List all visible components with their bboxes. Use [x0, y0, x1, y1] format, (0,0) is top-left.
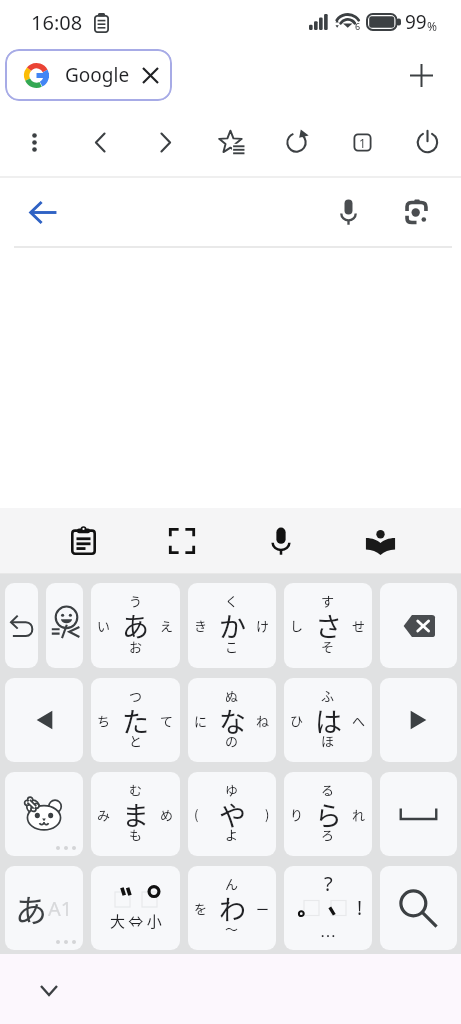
- button[interactable]: ま: [91, 772, 180, 856]
- staticText: な: [219, 701, 246, 740]
- staticText: ゆ: [225, 780, 239, 799]
- button[interactable]: Hide keyboard: [33, 974, 65, 1006]
- staticText: に: [194, 711, 208, 730]
- staticText: つ: [129, 686, 143, 705]
- staticText: の: [225, 731, 239, 750]
- staticText: て: [160, 711, 174, 730]
- button[interactable]: は: [284, 678, 372, 762]
- staticText: (: [194, 805, 199, 824]
- staticText: ひ: [290, 711, 304, 730]
- staticText: ー: [256, 899, 270, 918]
- staticText: !: [357, 895, 363, 921]
- button[interactable]: Back: [21, 190, 65, 234]
- button[interactable]: ?: [284, 866, 372, 950]
- staticText: う: [129, 591, 143, 610]
- staticText: せ: [352, 616, 366, 635]
- button[interactable]: た: [91, 678, 180, 762]
- button[interactable]: [380, 583, 457, 668]
- button[interactable]: Google: [5, 49, 172, 101]
- staticText: け: [256, 616, 270, 635]
- button[interactable]: New tab: [399, 53, 443, 97]
- button[interactable]: [5, 678, 83, 762]
- button[interactable]: [5, 772, 83, 856]
- staticText: わ: [219, 889, 246, 928]
- staticText: ほ: [321, 731, 335, 750]
- staticText: …: [320, 923, 337, 946]
- staticText: ): [265, 805, 270, 824]
- staticText: 1: [359, 135, 366, 151]
- staticText: れ: [352, 805, 366, 824]
- staticText: い: [97, 616, 111, 635]
- staticText: や: [219, 795, 246, 834]
- button[interactable]: Back: [78, 120, 122, 164]
- staticText: 大 ⇔ 小: [110, 910, 162, 932]
- staticText: ふ: [321, 686, 335, 705]
- staticText: き: [194, 616, 208, 635]
- staticText: と: [129, 731, 143, 750]
- button[interactable]: な: [188, 678, 276, 762]
- staticText: Google: [65, 62, 130, 88]
- staticText: ろ: [321, 825, 335, 844]
- staticText: を: [194, 899, 208, 918]
- staticText: ん: [225, 874, 239, 893]
- staticText: 99: [405, 9, 427, 35]
- button[interactable]: [380, 678, 457, 762]
- button[interactable]: Bookmarks: [209, 120, 253, 164]
- button[interactable]: Reload: [274, 120, 318, 164]
- staticText: さ: [315, 606, 342, 645]
- button[interactable]: 大 ⇔ 小: [91, 866, 180, 950]
- button[interactable]: Exit: [405, 120, 449, 164]
- button[interactable]: Scan text: [159, 518, 205, 564]
- staticText: め: [160, 805, 174, 824]
- staticText: あ: [122, 606, 149, 645]
- button[interactable]: Tabs: [340, 120, 384, 164]
- button[interactable]: Voice input: [258, 518, 304, 564]
- button[interactable]: [46, 583, 83, 668]
- staticText: す: [321, 591, 335, 610]
- staticText: %: [427, 18, 437, 34]
- button[interactable]: ら: [284, 772, 372, 856]
- staticText: ?: [324, 870, 333, 897]
- button[interactable]: や: [188, 772, 276, 856]
- staticText: ～: [225, 919, 239, 938]
- staticText: ぬ: [225, 686, 239, 705]
- staticText: る: [321, 780, 335, 799]
- staticText: む: [129, 780, 143, 799]
- staticText: そ: [321, 637, 335, 656]
- staticText: く: [225, 591, 239, 610]
- button[interactable]: あ: [91, 583, 180, 668]
- staticText: ね: [256, 711, 270, 730]
- staticText: 6: [355, 20, 361, 32]
- staticText: ら: [315, 795, 342, 834]
- staticText: ち: [97, 711, 111, 730]
- button[interactable]: Google Lens: [394, 190, 438, 234]
- button[interactable]: か: [188, 583, 276, 668]
- button[interactable]: Forward: [143, 120, 187, 164]
- staticText: し: [290, 616, 304, 635]
- staticText: 16:08: [31, 9, 83, 36]
- button[interactable]: [5, 583, 38, 668]
- staticText: り: [290, 805, 304, 824]
- staticText: ま: [122, 795, 149, 834]
- button[interactable]: Voice search: [326, 190, 370, 234]
- staticText: え: [160, 616, 174, 635]
- staticText: た: [122, 701, 149, 740]
- button[interactable]: Clipboard: [60, 518, 106, 564]
- button[interactable]: あ: [5, 866, 83, 950]
- staticText: A1: [48, 895, 73, 922]
- staticText: は: [315, 701, 342, 740]
- staticText: こ: [225, 637, 239, 656]
- staticText: お: [129, 637, 143, 656]
- button[interactable]: [380, 866, 457, 950]
- staticText: も: [129, 825, 143, 844]
- button[interactable]: [380, 772, 457, 856]
- button[interactable]: わ: [188, 866, 276, 950]
- button[interactable]: さ: [284, 583, 372, 668]
- staticText: へ: [352, 711, 366, 730]
- staticText: か: [219, 606, 246, 645]
- staticText: あ: [15, 885, 48, 931]
- button[interactable]: Menu: [12, 120, 56, 164]
- staticText: み: [97, 805, 111, 824]
- button[interactable]: Dictionary: [357, 518, 403, 564]
- staticText: よ: [225, 825, 239, 844]
